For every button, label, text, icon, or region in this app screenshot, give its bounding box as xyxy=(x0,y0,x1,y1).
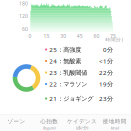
button[interactable]: ゾーン xyxy=(0,118,33,125)
staticText: (歩/分) xyxy=(76,125,88,131)
staticText: 23分 xyxy=(99,94,113,103)
staticText: 23：乳酸閾値 xyxy=(49,68,87,77)
staticText: ケイデンス xyxy=(67,118,97,125)
staticText: 24：無酸素 xyxy=(49,57,81,65)
staticText: 120 xyxy=(19,13,28,19)
staticText: 時間(分) xyxy=(105,36,122,43)
staticText: 15 xyxy=(44,32,50,39)
button[interactable]: ケイデンス xyxy=(65,118,98,131)
staticText: ゾーン xyxy=(7,118,25,125)
staticText: 接地時間 xyxy=(103,118,127,125)
staticText: 45 xyxy=(77,32,83,39)
staticText: <1分 xyxy=(99,57,113,65)
staticText: 180 xyxy=(19,0,28,7)
staticText: (ms) xyxy=(111,125,119,131)
button[interactable]: 25：高強度 xyxy=(45,45,113,54)
button[interactable]: 23：乳酸閾値 xyxy=(45,68,113,77)
staticText: 25：高強度 xyxy=(49,45,81,54)
button[interactable]: 接地時間 xyxy=(98,118,131,131)
button[interactable]: 心拍数 xyxy=(33,118,66,131)
staticText: 22分 xyxy=(99,68,113,77)
staticText: 30 xyxy=(60,32,66,39)
staticText: 22：マラソン xyxy=(49,80,87,88)
button[interactable]: 24：無酸素 xyxy=(45,57,113,65)
staticText: 0 xyxy=(28,32,31,39)
staticText: 75 xyxy=(110,32,116,39)
staticText: (bpm) xyxy=(43,125,55,131)
staticText: 0分 xyxy=(103,45,113,54)
staticText: 21：ジョギング xyxy=(49,94,93,103)
button[interactable]: 21：ジョギング xyxy=(45,94,113,103)
staticText: 60 xyxy=(93,32,99,39)
staticText: 心拍数 xyxy=(40,118,58,125)
staticText: 19分 xyxy=(99,80,113,88)
button[interactable]: 22：マラソン xyxy=(45,80,113,88)
staticText: 60 xyxy=(22,25,28,32)
